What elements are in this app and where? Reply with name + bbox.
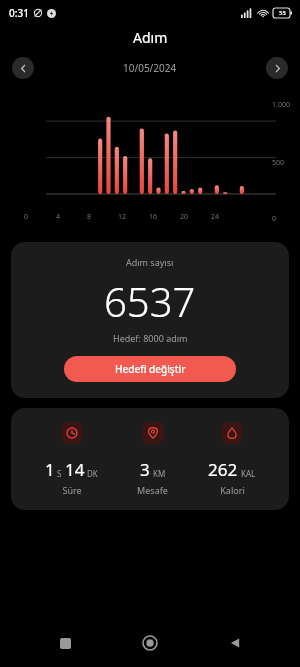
staticText: KAL <box>241 468 256 479</box>
staticText: Adım <box>133 28 168 47</box>
staticText: 0 <box>272 214 277 224</box>
other: Mesafe <box>142 422 164 444</box>
staticText: 20 <box>180 212 189 222</box>
staticText: 8 <box>87 212 92 222</box>
button[interactable]: Home <box>130 623 170 663</box>
staticText: 3 <box>140 458 150 481</box>
staticText: 0 <box>24 212 29 222</box>
staticText: Süre <box>62 484 82 496</box>
button[interactable]: Mesafe <box>131 422 174 496</box>
staticText: 24 <box>211 212 220 222</box>
button[interactable]: Previous day <box>12 57 34 79</box>
button[interactable]: Adım sayısı <box>11 242 289 398</box>
staticText: Hedefi değiştir <box>115 362 186 376</box>
button[interactable]: Back <box>215 623 255 663</box>
staticText: 0:31 <box>9 6 29 20</box>
staticText: 1 <box>45 458 55 481</box>
button[interactable]: Hedefi değiştir <box>64 356 236 382</box>
other: Süre <box>61 422 83 444</box>
other: Kalori <box>221 422 243 444</box>
button[interactable]: Next day <box>266 57 288 79</box>
staticText: 1.000 <box>272 100 290 110</box>
button[interactable]: Kalori <box>202 422 262 496</box>
staticText: 10/05/2024 <box>123 61 177 75</box>
staticText: 262 <box>208 458 238 481</box>
staticText: KM <box>153 468 166 479</box>
staticText: 6537 <box>104 274 196 328</box>
staticText: 55 <box>279 9 286 17</box>
staticText: 14 <box>65 458 85 481</box>
staticText: 500 <box>272 158 285 168</box>
staticText: 12 <box>118 212 127 222</box>
button[interactable]: Recents <box>45 623 85 663</box>
staticText: Hedef: 8000 adım <box>113 332 188 344</box>
staticText: S <box>57 468 62 479</box>
staticText: 4 <box>56 212 61 222</box>
staticText: 16 <box>149 212 158 222</box>
staticText: Kalori <box>220 484 245 496</box>
staticText: Mesafe <box>137 484 168 496</box>
staticText: DK <box>87 468 98 479</box>
button[interactable]: Süre <box>39 422 104 496</box>
staticText: Adım sayısı <box>126 256 174 268</box>
